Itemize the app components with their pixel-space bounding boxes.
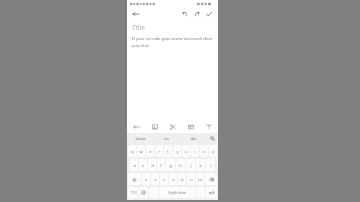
button[interactable]: Search [207,133,218,144]
button[interactable]: j [186,159,195,171]
button[interactable]: z [142,173,150,185]
staticText: p [212,149,215,154]
button[interactable]: v [169,173,177,185]
button[interactable]: i [191,145,199,157]
button[interactable]: l [206,159,215,171]
button[interactable]: Text format [200,121,218,133]
button[interactable]: Undo [180,9,190,19]
button[interactable]: on [153,133,180,144]
button[interactable]: c [160,173,168,185]
staticText: l [210,163,212,168]
button[interactable]: the [180,133,207,144]
staticText: y [176,149,179,154]
staticText: on [164,136,169,141]
staticText: d [151,163,154,168]
button[interactable]: Back [131,9,141,19]
button[interactable]: Emoji [139,187,148,198]
button[interactable]: Enter [206,187,217,198]
button[interactable]: y [173,145,181,157]
button[interactable]: a [130,159,138,171]
staticText: u [185,149,188,154]
staticText: ?123 [130,191,137,195]
staticText: know [135,136,146,141]
button[interactable]: Insert image [146,121,164,133]
button[interactable]: n [187,173,195,185]
staticText: o [203,149,206,154]
staticText: q [131,149,134,154]
button[interactable]: Insert drawing [164,121,182,133]
button[interactable]: f [157,159,165,171]
button[interactable]: b [178,173,186,185]
staticText: k [199,163,202,168]
staticText: w [139,149,143,154]
button[interactable]: d [148,159,156,171]
button[interactable]: ?123 [128,187,138,198]
button[interactable]: u [182,145,190,157]
staticText: m [198,177,202,182]
button[interactable]: p [209,145,217,157]
staticText: g [169,163,172,168]
button[interactable]: Shift [128,173,141,185]
staticText: e [149,149,152,154]
button[interactable]: t [164,145,172,157]
button[interactable]: e [146,145,154,157]
button[interactable]: English (India) [159,187,195,198]
button[interactable]: s [139,159,147,171]
staticText: i [194,149,196,154]
button[interactable]: h [176,159,185,171]
staticText: r [158,149,160,154]
staticText: v [172,177,175,182]
staticText: , [153,191,154,195]
button[interactable]: Backspace [205,173,217,185]
staticText: c [163,177,165,182]
staticText: a [133,163,136,168]
staticText: Title [132,23,145,32]
staticText: the [190,136,197,141]
staticText: n [190,177,193,182]
button[interactable]: Save [204,9,214,19]
staticText: j [190,163,192,168]
button[interactable]: w [137,145,145,157]
staticText: x [154,177,157,182]
staticText: English (India) [168,191,186,195]
staticText: f [160,163,162,168]
button[interactable]: m [196,173,204,185]
button[interactable]: g [166,159,175,171]
staticText: t [167,149,169,154]
button[interactable]: know [127,133,153,144]
button[interactable]: k [196,159,205,171]
staticText: b [181,177,184,182]
staticText: If your vs code gets zoom too much then … [132,36,213,49]
button[interactable]: o [200,145,208,157]
button[interactable]: q [128,145,136,157]
button[interactable]: Back [127,121,146,133]
button[interactable]: Insert table [182,121,200,133]
staticText: . [200,191,201,195]
button[interactable]: , [149,187,158,198]
staticText: z [145,177,147,182]
button[interactable]: x [151,173,159,185]
button[interactable]: r [155,145,163,157]
button[interactable]: Redo [192,9,202,19]
staticText: h [179,163,182,168]
staticText: s [142,163,144,168]
